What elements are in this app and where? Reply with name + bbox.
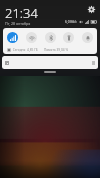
staticText: Пт, 28 октября (5, 21, 31, 26)
button[interactable] (2, 56, 98, 69)
button[interactable]: Settings (87, 5, 96, 14)
button[interactable]: Wi-Fi (26, 32, 37, 43)
button[interactable]: Mobile data (7, 32, 18, 43)
button[interactable]: Flashlight (63, 32, 74, 43)
staticText: Сегодня 4,85 ГБ (11, 48, 38, 52)
button[interactable]: Silent mode (82, 32, 93, 43)
button[interactable]: Expand notification shade (44, 71, 56, 73)
staticText: Память 39,04 % (44, 48, 69, 52)
staticText: 6,0 Кб/с (65, 20, 77, 24)
staticText: 21:34 (5, 4, 38, 22)
button[interactable]: Сегодня 4,85 ГБ (3, 46, 97, 54)
button[interactable]: Bluetooth (45, 32, 56, 43)
